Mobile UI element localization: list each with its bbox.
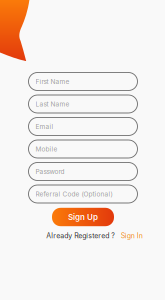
staticText: First Name [35,77,69,85]
staticText: Referral Code (Optional) [35,190,112,198]
staticText: Last Name [35,100,69,108]
staticText: Email [35,122,53,130]
staticText: Password [35,167,64,175]
staticText: Sign Up [68,212,98,222]
staticText: Sign In [121,231,143,240]
button[interactable]: Referral Code (Optional) [28,185,137,203]
button[interactable]: Sign In [121,231,143,240]
button[interactable]: Sign Up [52,208,114,226]
button[interactable]: Mobile [28,140,137,158]
button[interactable]: Email [28,117,137,135]
button[interactable]: Password [28,162,137,180]
staticText: Already Registered ? [46,231,115,240]
button[interactable]: First Name [28,72,137,90]
button[interactable]: Last Name [28,95,137,113]
staticText: Mobile [35,145,57,153]
